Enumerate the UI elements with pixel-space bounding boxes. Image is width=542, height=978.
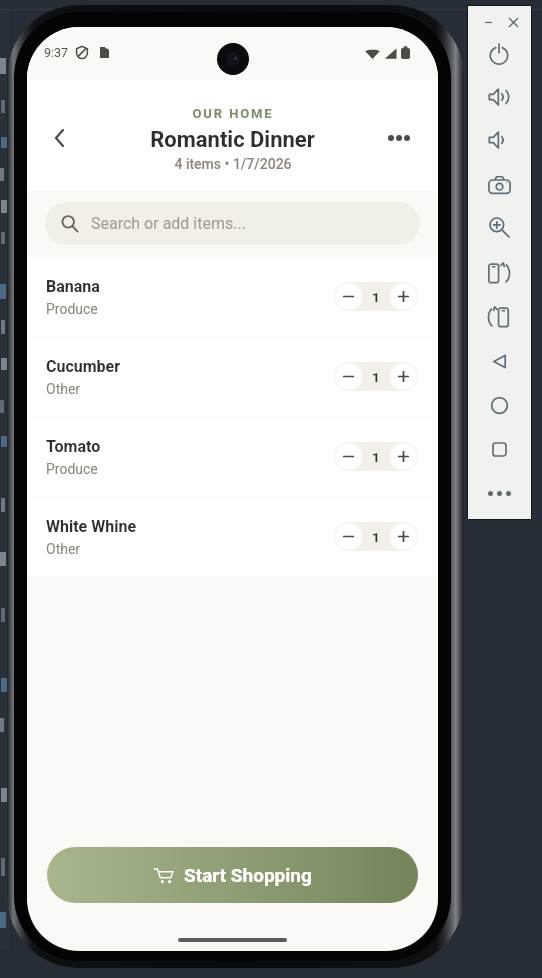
button[interactable]: Cucumber bbox=[27, 337, 438, 416]
button[interactable]: More bbox=[483, 477, 515, 509]
button[interactable]: Decrease quantity bbox=[335, 523, 362, 550]
staticText: 1 bbox=[372, 289, 380, 305]
staticText: 1 bbox=[372, 369, 380, 385]
button[interactable]: Home bbox=[483, 389, 515, 421]
button[interactable]: Zoom bbox=[483, 211, 515, 243]
button[interactable]: Volume up bbox=[483, 81, 515, 113]
staticText: Other bbox=[46, 381, 81, 397]
button[interactable]: Decrease quantity bbox=[335, 363, 362, 390]
button[interactable]: Start Shopping bbox=[47, 847, 418, 903]
button[interactable]: Back bbox=[483, 345, 515, 377]
staticText: 9:37 bbox=[44, 45, 69, 60]
button[interactable]: Increase quantity bbox=[390, 443, 417, 470]
staticText: 4 items • 1/7/2026 bbox=[174, 156, 292, 172]
staticText: Romantic Dinner bbox=[150, 127, 315, 153]
button[interactable]: Increase quantity bbox=[390, 363, 417, 390]
button[interactable]: Search or add items... bbox=[45, 202, 420, 245]
button[interactable]: More options bbox=[377, 116, 421, 160]
staticText: White Whine bbox=[46, 517, 137, 536]
button[interactable]: Decrease quantity bbox=[335, 443, 362, 470]
staticText: Tomato bbox=[46, 437, 101, 456]
button[interactable]: Volume down bbox=[483, 124, 515, 156]
staticText: Produce bbox=[46, 461, 98, 477]
staticText: 1 bbox=[372, 529, 380, 545]
button[interactable]: Minimize bbox=[478, 12, 498, 32]
button[interactable]: White Whine bbox=[27, 497, 438, 576]
button[interactable]: Increase quantity bbox=[390, 283, 417, 310]
button[interactable]: Back bbox=[37, 116, 81, 160]
button[interactable]: Recents bbox=[483, 433, 515, 465]
button[interactable]: Close bbox=[503, 12, 523, 32]
staticText: Produce bbox=[46, 301, 98, 317]
staticText: 1 bbox=[372, 449, 380, 465]
staticText: Other bbox=[46, 541, 81, 557]
staticText: Banana bbox=[46, 277, 100, 296]
staticText: Start Shopping bbox=[184, 864, 312, 886]
button[interactable]: Power bbox=[483, 38, 515, 70]
button[interactable]: Tomato bbox=[27, 417, 438, 496]
button[interactable]: Increase quantity bbox=[390, 523, 417, 550]
staticText: OUR HOME bbox=[192, 106, 274, 121]
staticText: Cucumber bbox=[46, 357, 121, 376]
button[interactable]: Screenshot bbox=[483, 169, 515, 201]
button[interactable]: Decrease quantity bbox=[335, 283, 362, 310]
button[interactable]: Rotate left bbox=[483, 257, 515, 289]
staticText: Search or add items... bbox=[91, 214, 246, 233]
button[interactable]: Banana bbox=[27, 257, 438, 336]
button[interactable]: Rotate right bbox=[483, 301, 515, 333]
